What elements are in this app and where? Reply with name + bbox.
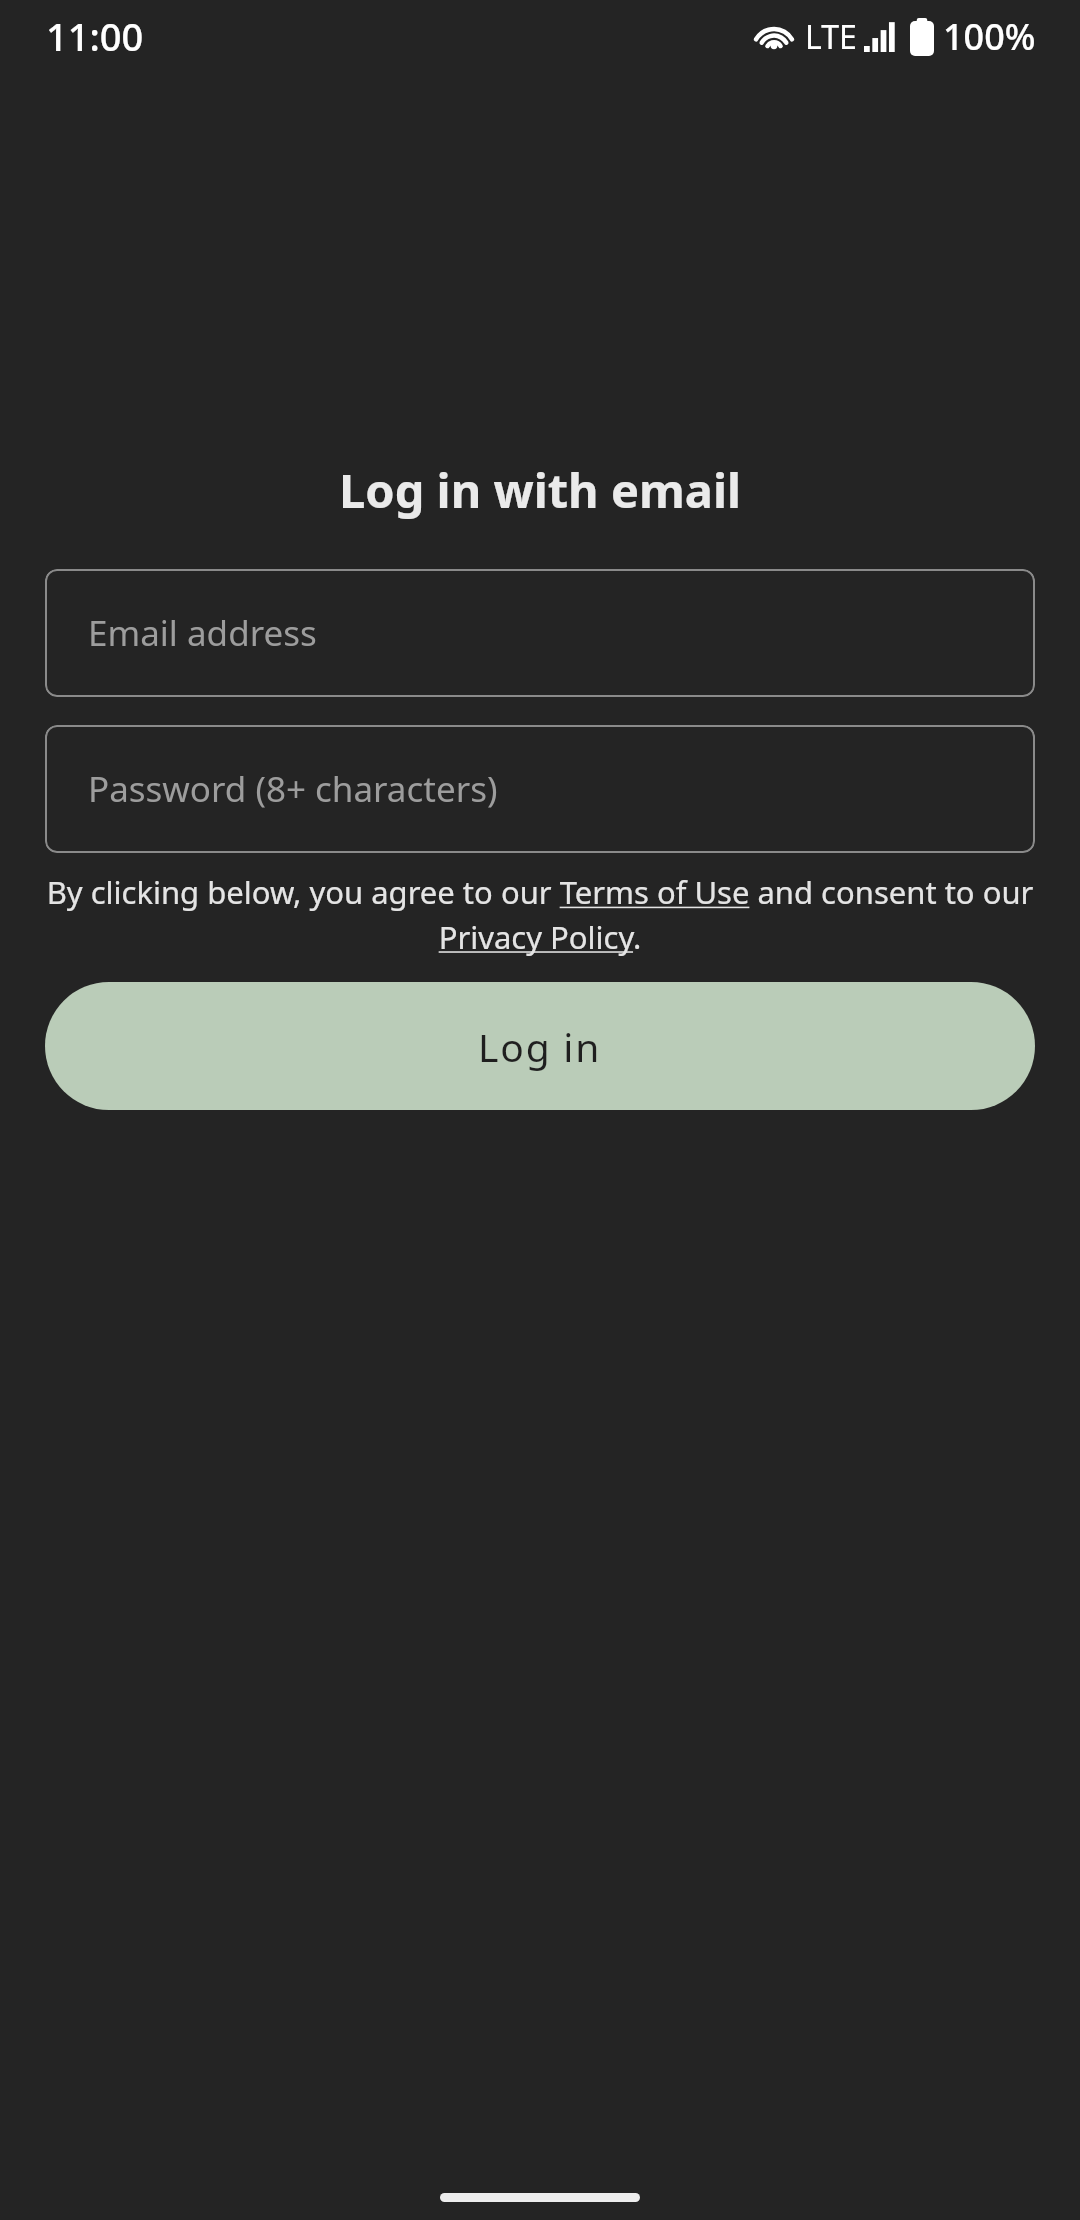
staticText: 11:00: [46, 10, 144, 62]
button[interactable]: Log in: [45, 982, 1035, 1110]
button[interactable]: Password (8+ characters): [45, 725, 1035, 853]
staticText: Log in with email: [339, 458, 741, 522]
button[interactable]: By clicking below, you agree to our Term…: [45, 871, 1035, 958]
button[interactable]: Email address: [45, 569, 1035, 697]
staticText: Log in: [478, 1020, 602, 1073]
staticText: Email address: [88, 609, 317, 657]
other: Wi-Fi: [754, 21, 794, 53]
staticText: Password (8+ characters): [88, 765, 498, 813]
staticText: LTE: [805, 15, 857, 59]
other: Battery: [910, 18, 934, 56]
staticText: 100%: [943, 12, 1036, 61]
other: Signal: [864, 22, 896, 52]
